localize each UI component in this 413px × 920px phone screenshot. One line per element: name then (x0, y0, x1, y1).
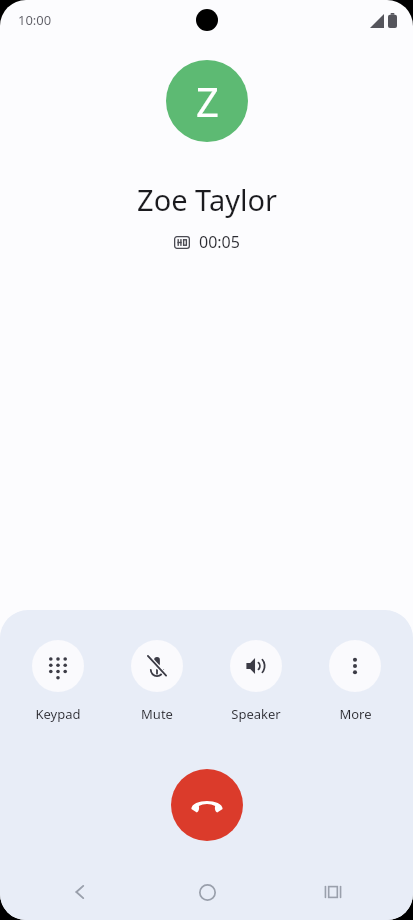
button[interactable]: Keypad (14, 638, 102, 725)
staticText: Zoe Taylor (137, 180, 277, 219)
button[interactable]: Mute (113, 638, 201, 725)
button[interactable]: Back (58, 870, 102, 914)
button[interactable]: Recents (311, 870, 355, 914)
button[interactable]: More (311, 638, 399, 725)
staticText: 00:05 (199, 231, 240, 253)
staticText: Mute (141, 705, 173, 723)
staticText: Speaker (231, 705, 281, 723)
staticText: Keypad (35, 705, 81, 723)
button[interactable]: End call (171, 769, 243, 841)
staticText: 10:00 (18, 11, 52, 29)
staticText: Z (196, 74, 219, 128)
button[interactable]: Home (185, 870, 229, 914)
button[interactable]: Speaker (212, 638, 300, 725)
staticText: More (339, 705, 372, 723)
